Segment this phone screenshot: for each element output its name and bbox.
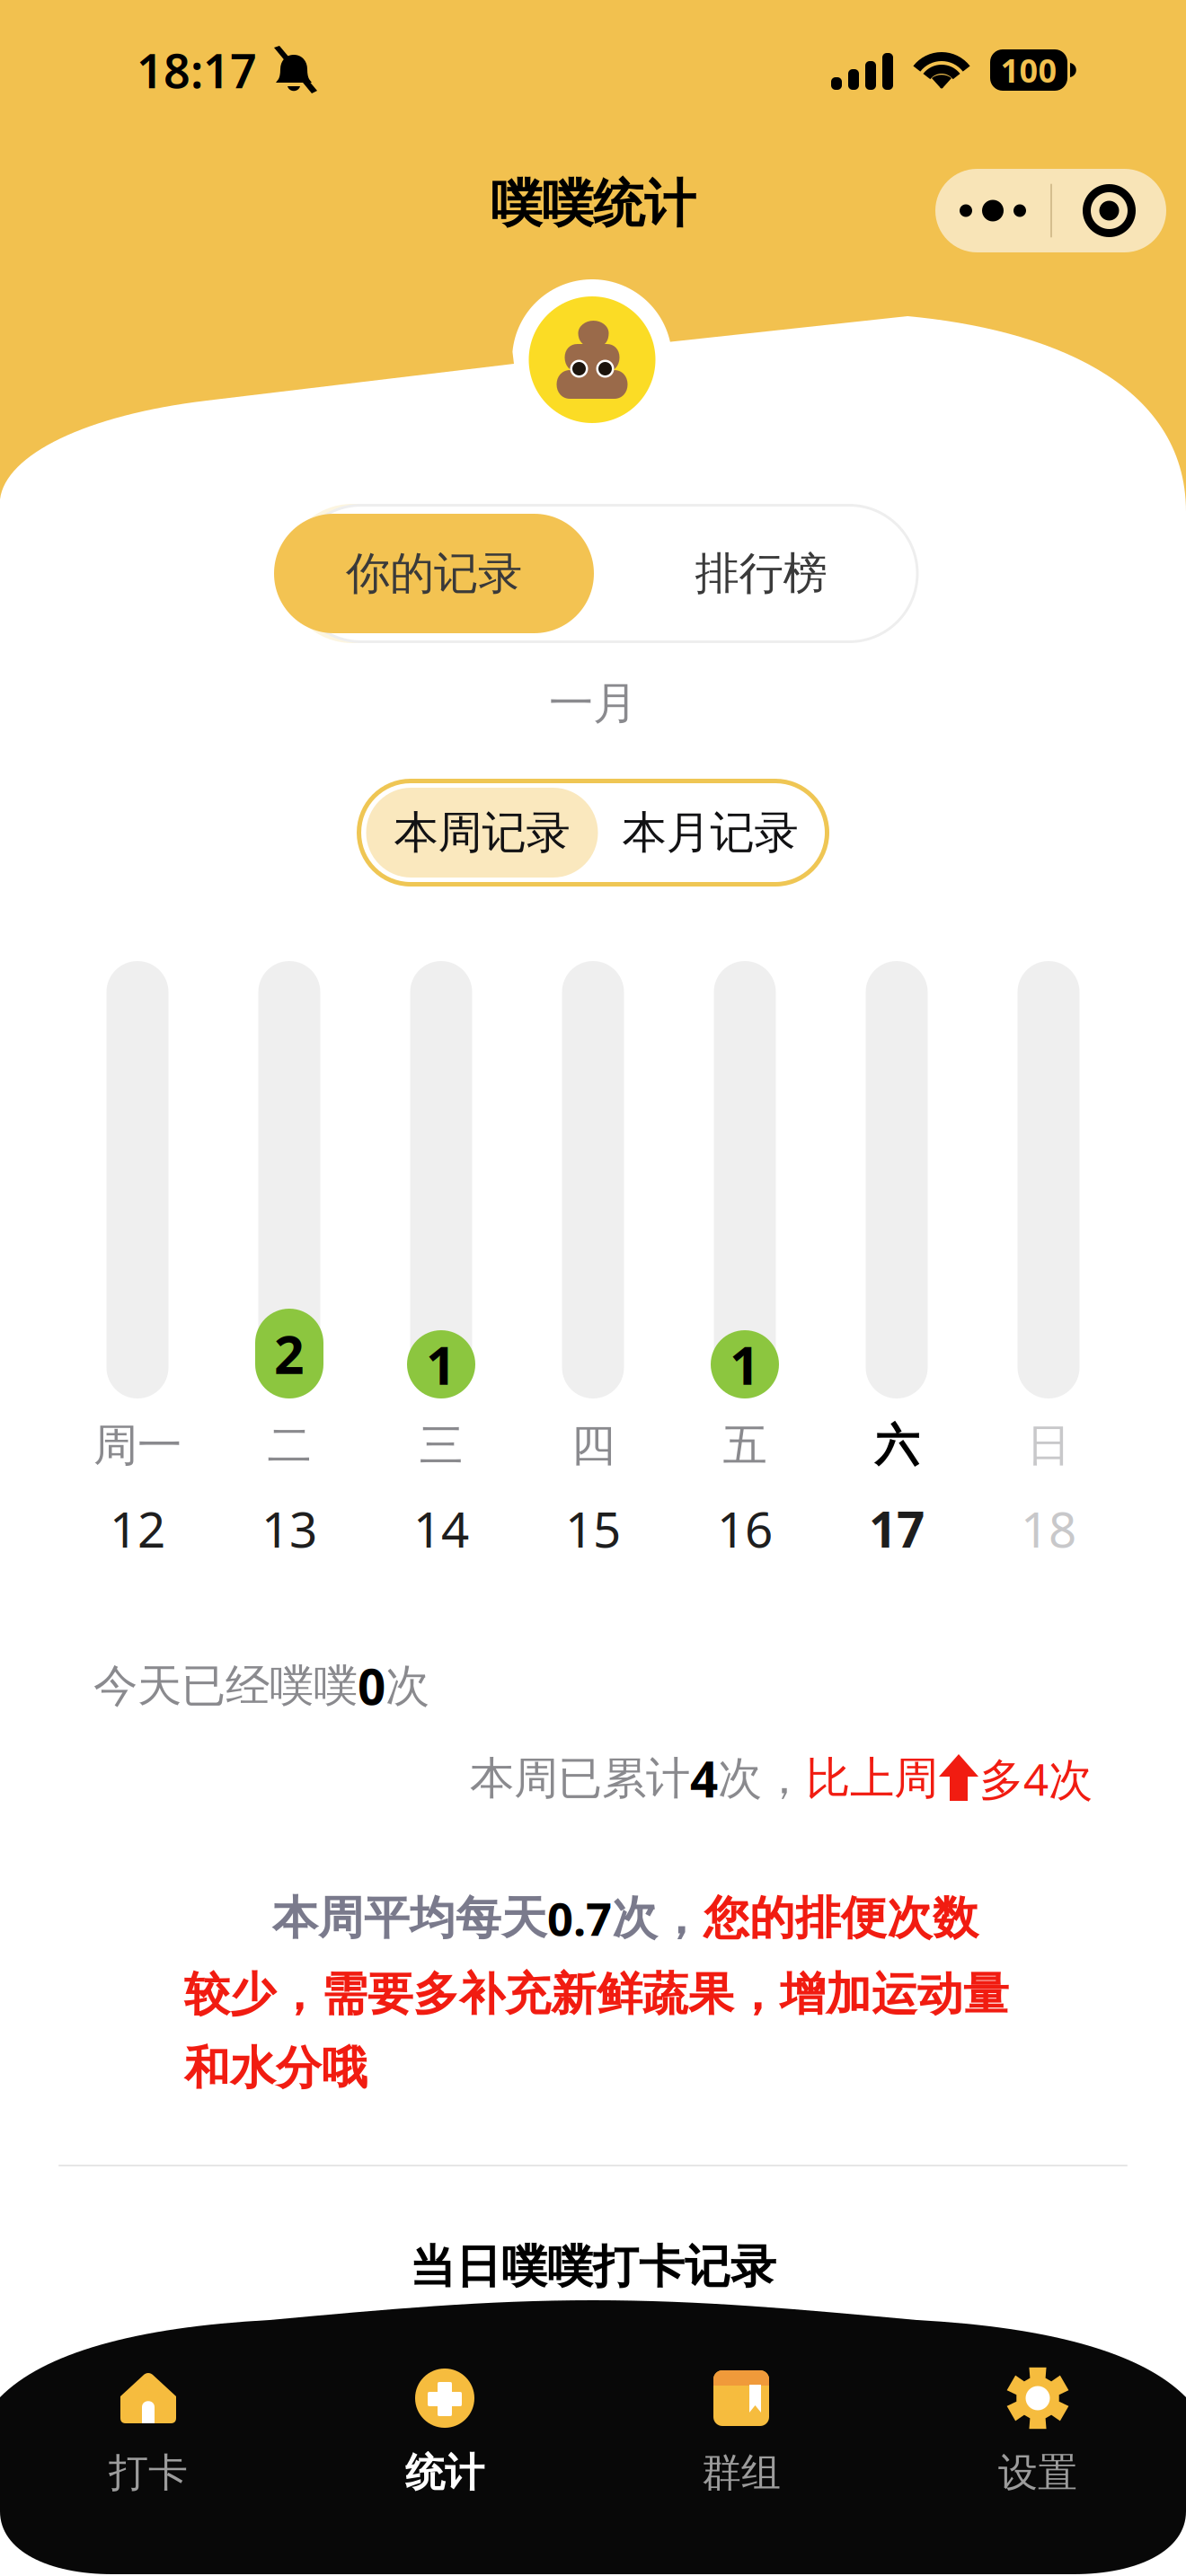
staticText: 比上周 — [806, 1751, 938, 1806]
staticText: 排行榜 — [695, 546, 827, 601]
button[interactable]: 群组 — [593, 2366, 889, 2497]
button[interactable]: Close mini program — [1052, 169, 1166, 252]
staticText: 较少，需要多补充新鲜蔬果，增加运动量 — [184, 1966, 1009, 2022]
staticText: 15 — [565, 1496, 621, 1561]
staticText: 0.7 — [547, 1888, 612, 1948]
button[interactable]: 统计 — [296, 2366, 593, 2497]
staticText: 噗噗统计 — [491, 172, 695, 236]
staticText: 群组 — [702, 2448, 781, 2497]
staticText: 17 — [869, 1496, 925, 1561]
button[interactable]: 本周记录 — [366, 788, 598, 878]
staticText: 五 — [723, 1418, 767, 1473]
staticText: 13 — [261, 1496, 317, 1561]
staticText: 二 — [267, 1418, 311, 1473]
staticText: 本周记录 — [394, 805, 570, 860]
staticText: 四 — [571, 1418, 615, 1473]
button[interactable]: 排行榜 — [626, 514, 896, 633]
staticText: 12 — [110, 1496, 165, 1561]
staticText: 18:17 — [137, 39, 257, 101]
staticText: 4 — [690, 1746, 718, 1811]
staticText: 0 — [358, 1653, 385, 1719]
button[interactable]: 你的记录 — [274, 514, 594, 633]
staticText: 次， — [718, 1751, 806, 1806]
button[interactable]: More options — [935, 169, 1050, 252]
staticText: 1 — [730, 1329, 760, 1399]
staticText: 三 — [419, 1418, 463, 1473]
button[interactable]: 打卡 — [0, 2366, 296, 2497]
staticText: 100 — [1000, 49, 1057, 92]
staticText: 2 — [274, 1319, 305, 1389]
staticText: 当日噗噗打卡记录 — [410, 2239, 776, 2295]
staticText: 1 — [426, 1329, 456, 1399]
staticText: 和水分哦 — [184, 2040, 367, 2096]
staticText: 六 — [875, 1418, 919, 1473]
staticText: 设置 — [998, 2448, 1077, 2497]
staticText: 次 — [385, 1659, 429, 1713]
staticText: 本周已累计 — [470, 1751, 690, 1806]
staticText: 18 — [1021, 1496, 1076, 1561]
staticText: 你的记录 — [346, 546, 522, 601]
staticText: 14 — [413, 1496, 469, 1561]
staticText: 本周平均每天 — [272, 1890, 547, 1946]
button[interactable]: 本月记录 — [598, 788, 823, 878]
staticText: 周一 — [93, 1418, 181, 1473]
staticText: 次， — [612, 1890, 704, 1946]
staticText: 一月 — [549, 676, 637, 730]
staticText: 打卡 — [109, 2448, 188, 2497]
staticText: 统计 — [405, 2448, 484, 2497]
staticText: 16 — [717, 1496, 773, 1561]
staticText: 日 — [1027, 1418, 1071, 1473]
staticText: 今天已经噗噗 — [93, 1659, 358, 1713]
button[interactable]: 设置 — [889, 2366, 1186, 2497]
staticText: 您的排便次数 — [704, 1890, 978, 1946]
staticText: 本月记录 — [622, 805, 798, 860]
staticText: 多4次 — [979, 1749, 1093, 1808]
